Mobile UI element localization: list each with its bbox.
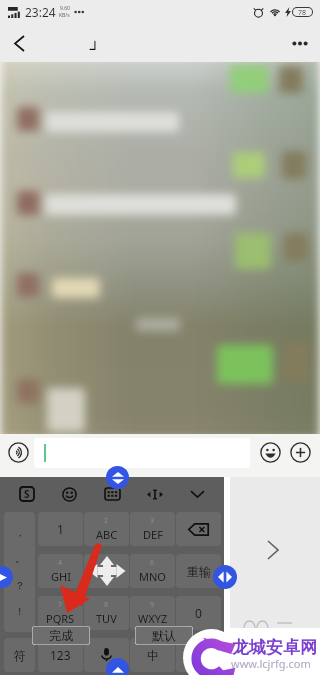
staticText: S — [24, 487, 30, 501]
button[interactable]: Move up — [106, 658, 129, 675]
button[interactable]: 完成 — [32, 626, 90, 645]
button[interactable]: 4 — [38, 554, 83, 588]
button[interactable]: 中 — [130, 638, 175, 672]
staticText: ？ — [15, 579, 25, 592]
button[interactable]: Hide keyboard — [181, 478, 213, 510]
button[interactable]: Direction pad — [84, 554, 129, 588]
staticText: ， — [15, 526, 25, 539]
staticText: 0 — [195, 605, 202, 621]
staticText: 8 — [104, 600, 109, 610]
button[interactable]: Emoji — [53, 478, 85, 510]
button[interactable]: 1 — [38, 512, 83, 546]
staticText: KB/s — [59, 12, 70, 19]
button[interactable]: Resize vertically — [106, 466, 129, 489]
staticText: MNO — [139, 569, 166, 584]
staticText: 重输 — [187, 564, 211, 579]
button[interactable]: 3 — [130, 512, 175, 546]
staticText: DEF — [143, 527, 163, 542]
staticText: 9.60 — [60, 5, 70, 12]
button[interactable]: Move left — [0, 566, 13, 588]
staticText: WXYZ — [138, 611, 168, 626]
button[interactable]: Voice input — [84, 638, 129, 672]
staticText: 。 — [15, 552, 25, 565]
staticText: 3 — [150, 516, 155, 526]
staticText: 7 — [58, 600, 63, 610]
button[interactable]: 6 — [130, 554, 175, 588]
staticText: 龙城安卓网 — [232, 637, 317, 658]
staticText: 123 — [50, 647, 71, 663]
button[interactable] — [176, 638, 221, 672]
staticText: 6 — [150, 558, 155, 568]
button[interactable]: 0 — [176, 596, 221, 630]
button[interactable]: 7 — [38, 596, 83, 630]
staticText: PQRS — [46, 611, 75, 626]
button[interactable]: Keyboard settings — [96, 478, 128, 510]
button[interactable]: Move cursor — [139, 478, 171, 510]
staticText: TUV — [96, 611, 117, 626]
button[interactable]: Expand keyboard — [258, 535, 288, 565]
button[interactable]: Emoji — [257, 439, 284, 466]
staticText: www.lcjrfg.com — [231, 656, 311, 671]
staticText: 」 — [88, 32, 105, 53]
button[interactable]: 重输 — [176, 554, 221, 588]
staticText: 中 — [147, 648, 159, 663]
button[interactable]: 9 — [130, 596, 175, 630]
button[interactable]: 2 — [84, 512, 129, 546]
button[interactable]: Sogou input — [11, 478, 43, 510]
button[interactable]: 默认 — [135, 626, 193, 645]
staticText: 1 — [57, 521, 64, 537]
button[interactable]: Resize horizontally — [213, 565, 237, 589]
staticText: 符 — [14, 648, 26, 663]
button[interactable] — [34, 438, 250, 468]
staticText: 4 — [58, 558, 63, 568]
button[interactable]: 8 — [84, 596, 129, 630]
staticText: ！ — [15, 605, 25, 618]
button[interactable]: More options — [283, 24, 317, 62]
staticText: 默认 — [152, 628, 176, 643]
staticText: 23:24 — [25, 4, 56, 20]
button[interactable]: 123 — [38, 638, 83, 672]
staticText: ABC — [96, 527, 118, 542]
staticText: 9 — [150, 600, 155, 610]
button[interactable]: ， — [4, 512, 35, 632]
staticText: GHI — [51, 569, 71, 584]
button[interactable]: Back — [2, 24, 36, 62]
staticText: 78 — [298, 8, 307, 16]
staticText: 2 — [104, 516, 109, 526]
button[interactable]: 符 — [4, 638, 35, 672]
button[interactable]: Backspace — [176, 512, 221, 546]
button[interactable]: Add attachment — [287, 439, 314, 466]
button[interactable]: Voice input — [5, 439, 32, 466]
staticText: 完成 — [49, 628, 73, 643]
